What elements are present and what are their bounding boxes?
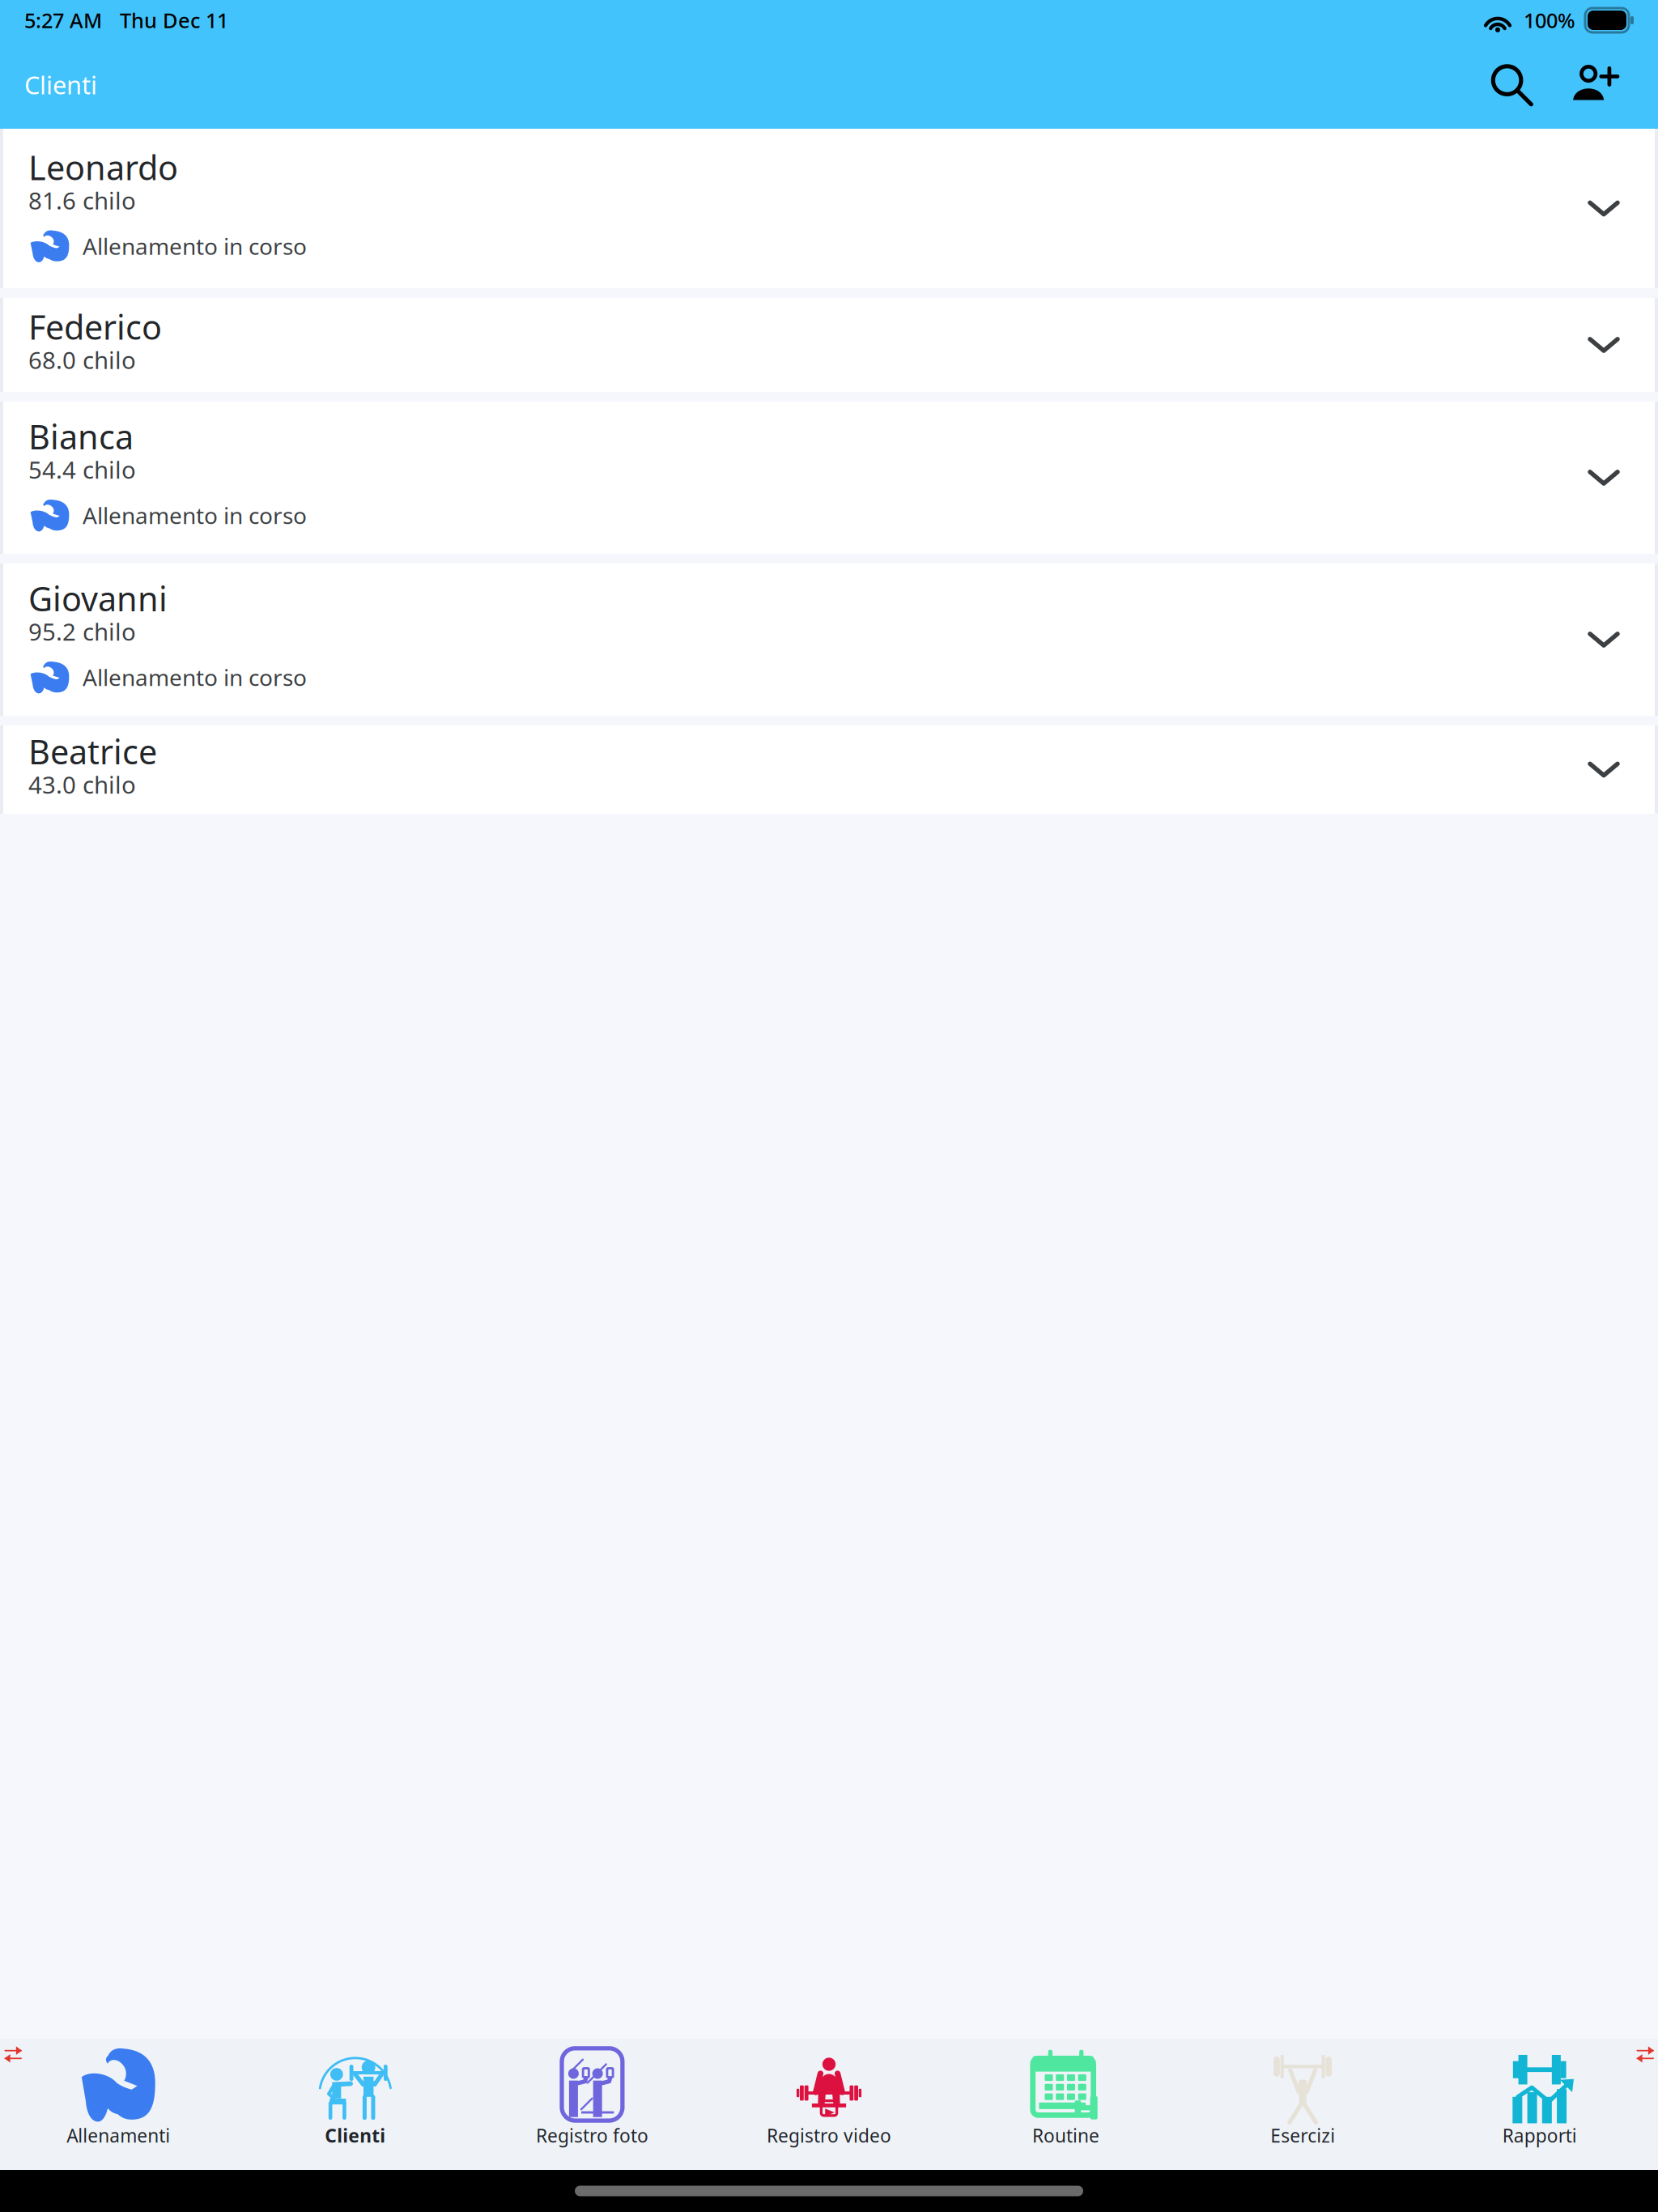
button[interactable]: Federico: [0, 298, 1658, 392]
button[interactable]: Search: [1478, 63, 1545, 106]
button[interactable]: Beatrice: [0, 725, 1658, 814]
staticText: 5:27 AM: [24, 7, 102, 34]
staticText: Leonardo: [28, 145, 178, 189]
staticText: Thu Dec 11: [120, 7, 228, 34]
staticText: Allenamento in corso: [83, 662, 307, 692]
staticText: Giovanni: [28, 576, 168, 621]
button[interactable]: Bianca: [0, 402, 1658, 554]
staticText: Rapporti: [1502, 2123, 1577, 2148]
button[interactable]: Esercizi: [1184, 2037, 1421, 2172]
staticText: Registro video: [767, 2123, 891, 2148]
button[interactable]: Clienti: [237, 2037, 474, 2172]
button[interactable]: Allenamenti: [0, 2037, 237, 2172]
staticText: Beatrice: [28, 729, 157, 774]
staticText: Clienti: [325, 2123, 386, 2148]
button[interactable]: Add client: [1561, 62, 1629, 107]
staticText: 43.0 chilo: [28, 769, 136, 800]
staticText: 54.4 chilo: [28, 454, 136, 485]
staticText: Routine: [1032, 2123, 1099, 2148]
staticText: Allenamenti: [67, 2123, 170, 2148]
staticText: Allenamento in corso: [83, 231, 307, 261]
button[interactable]: Leonardo: [0, 129, 1658, 288]
staticText: Federico: [28, 305, 162, 349]
staticText: Allenamento in corso: [83, 500, 307, 530]
button[interactable]: Registro foto: [474, 2037, 711, 2172]
button[interactable]: Giovanni: [0, 564, 1658, 716]
staticText: Clienti: [24, 68, 97, 101]
staticText: Registro foto: [536, 2123, 648, 2148]
staticText: Bianca: [28, 414, 134, 459]
button[interactable]: Registro video: [711, 2037, 947, 2172]
staticText: 95.2 chilo: [28, 616, 136, 647]
staticText: 100%: [1524, 7, 1575, 34]
staticText: 81.6 chilo: [28, 185, 136, 216]
button[interactable]: Rapporti: [1421, 2037, 1658, 2172]
button[interactable]: Routine: [947, 2037, 1184, 2172]
staticText: Esercizi: [1270, 2123, 1335, 2148]
staticText: 68.0 chilo: [28, 344, 136, 376]
